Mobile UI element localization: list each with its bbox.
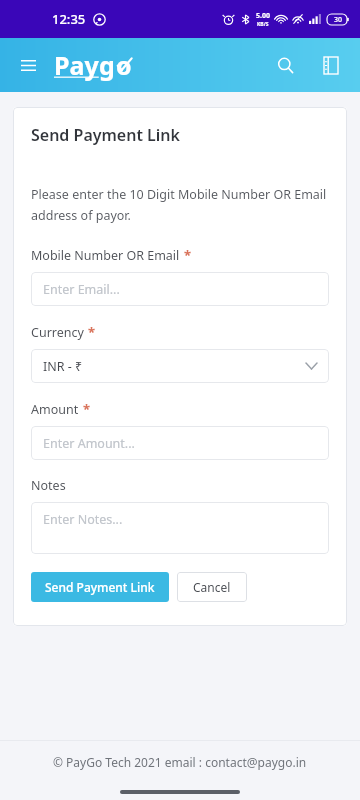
staticText: Pay [54,48,99,82]
staticText: Send Payment Link [45,579,155,595]
staticText: KB/S [257,21,269,28]
staticText: © PayGo Tech 2021 email : contact@paygo.… [53,754,307,770]
button[interactable]: Send Payment Link [31,572,169,602]
staticText: * [88,323,96,341]
staticText: 12:35 [52,10,86,28]
button[interactable]: INR - ₹ [31,349,329,383]
staticText: g [99,48,115,82]
staticText: 30 [334,15,343,25]
staticText: INR - ₹ [43,358,83,375]
button[interactable]: Pay [54,48,132,82]
staticText: 5.00 [256,11,270,21]
button[interactable]: Notes [312,46,350,84]
staticText: Cancel [193,579,231,595]
staticText: * [83,400,91,418]
staticText: Notes [31,477,66,494]
staticText: Please enter the 10 Digit Mobile Number … [31,186,327,224]
button[interactable]: Menu [10,47,46,83]
staticText: o [116,48,132,82]
staticText: Enter Email... [43,281,120,298]
button[interactable]: Enter Email... [31,272,329,306]
staticText: Send Payment Link [31,124,180,146]
button[interactable]: Enter Amount... [31,426,329,460]
staticText: * [184,246,192,264]
staticText: Currency [31,324,84,341]
staticText: Enter Notes... [43,511,123,528]
staticText: Amount [31,401,79,418]
button[interactable]: Enter Notes... [31,502,329,554]
button[interactable]: Cancel [177,572,247,602]
staticText: Mobile Number OR Email [31,247,180,264]
button[interactable]: Search [266,46,304,84]
staticText: Enter Amount... [43,435,135,452]
